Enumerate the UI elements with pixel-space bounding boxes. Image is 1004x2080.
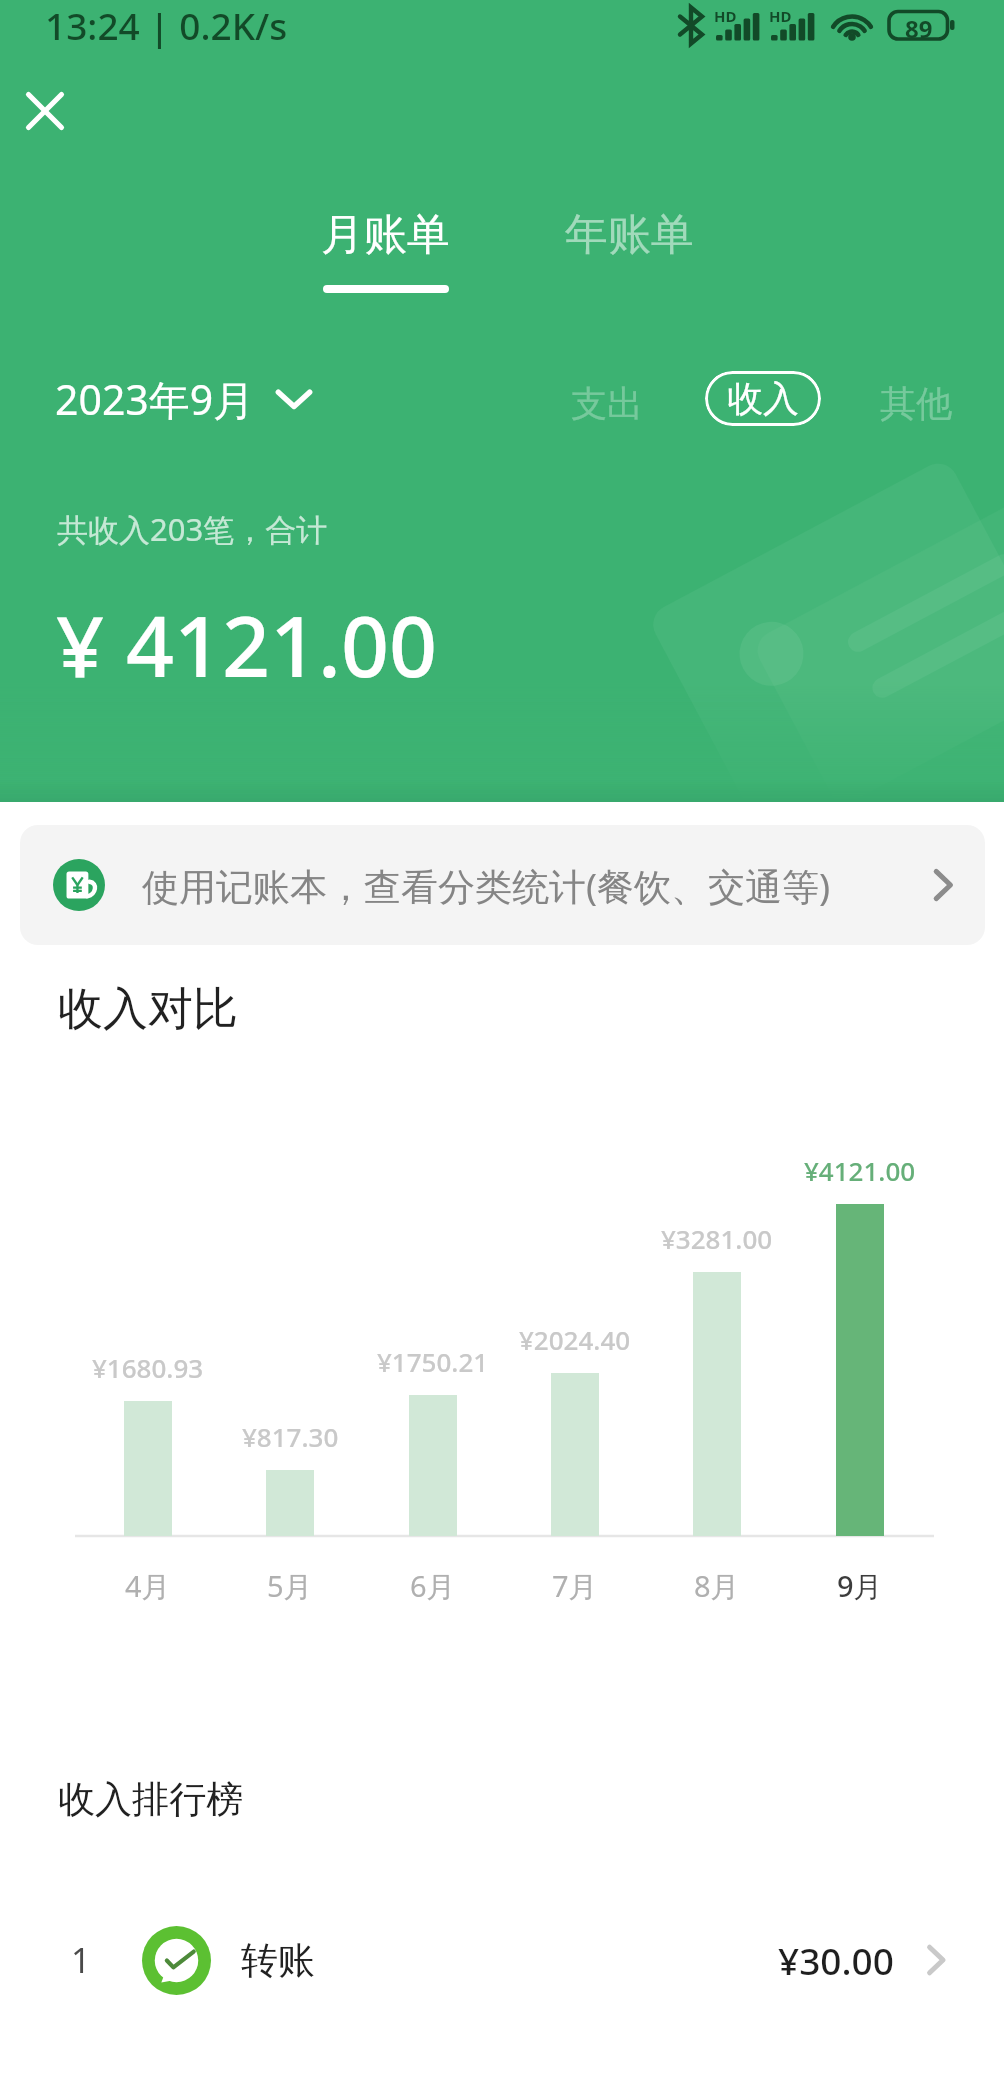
staticText: 使用记账本，查看分类统计(餐饮、交通等) [142, 860, 831, 911]
button[interactable]: 收入 [705, 371, 821, 426]
staticText: 9月 [837, 1566, 883, 1606]
staticText: ¥2024.40 [519, 1322, 631, 1357]
staticText: 5月 [267, 1566, 313, 1606]
button[interactable]: 使用记账本，查看分类统计(餐饮、交通等) [20, 825, 985, 945]
staticText: ¥3281.00 [661, 1221, 773, 1256]
staticText: ¥1680.93 [92, 1350, 204, 1385]
staticText: 4月 [125, 1566, 171, 1606]
staticText: 6月 [410, 1566, 456, 1606]
staticText: 收入对比 [58, 981, 238, 1038]
staticText: ¥30.00 [778, 1935, 894, 1985]
staticText: HD [714, 6, 737, 26]
staticText: 8月 [694, 1566, 740, 1606]
button[interactable]: 年账单 [545, 196, 714, 274]
staticText: ¥4121.00 [804, 1153, 916, 1188]
staticText: 其他 [880, 381, 952, 426]
staticText: 月账单 [321, 208, 450, 262]
button[interactable]: 2023年9月 [43, 361, 323, 437]
staticText: 支出 [571, 381, 643, 426]
button[interactable]: 月账单 [301, 196, 470, 305]
staticText: 年账单 [565, 208, 694, 262]
staticText: HD [769, 6, 792, 26]
staticText: 7月 [552, 1566, 598, 1606]
staticText: ¥1750.21 [377, 1344, 489, 1379]
staticText: 1 [71, 1937, 91, 1983]
button[interactable]: 1 [0, 1900, 1004, 2020]
button[interactable]: Close [9, 75, 81, 147]
button[interactable]: 其他 [868, 372, 964, 435]
staticText: 转账 [241, 1937, 315, 1984]
staticText: ¥817.30 [242, 1419, 339, 1454]
button[interactable]: 支出 [559, 372, 655, 435]
staticText: 收入排行榜 [58, 1776, 243, 1823]
staticText: 收入 [727, 376, 799, 421]
staticText: 13:24 | 0.2K/s [45, 0, 288, 50]
staticText: 89 [905, 12, 933, 39]
staticText: 共收入203笔，合计 [57, 508, 328, 550]
staticText: ¥ 4121.00 [56, 587, 438, 701]
staticText: 2023年9月 [55, 371, 255, 427]
